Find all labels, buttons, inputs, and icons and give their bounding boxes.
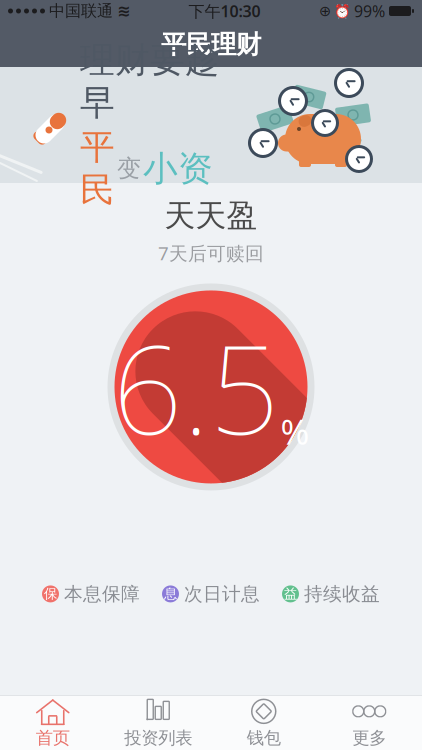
staticText: 平民理财 [161,29,261,60]
staticText: % [280,408,309,454]
staticText: 钱包 [247,727,281,749]
staticText: 保 [44,586,57,602]
staticText: 下午10:30 [188,0,260,22]
staticText: 7天后可赎回 [158,241,264,265]
button[interactable]: 首页 [0,691,105,750]
staticText: 投资列表 [124,727,192,749]
staticText: 理财要趁早 [80,39,220,124]
staticText: 持续收益 [304,582,380,605]
staticText: 平民 [80,126,115,211]
staticText: 中国联通 [49,1,113,21]
staticText: 小资 [143,147,213,190]
button[interactable]: 更多 [316,691,422,750]
staticText: 首页 [36,727,70,749]
button[interactable]: 钱包 [211,691,316,750]
staticText: 99% [354,0,385,22]
staticText: ⏰ [334,3,351,19]
staticText: 6.5 [112,305,279,468]
staticText: 天天盈 [164,197,257,235]
staticText: 本息保障 [64,582,140,605]
staticText: 益 [284,586,297,602]
staticText: 息 [164,586,177,602]
staticText: 变 [117,154,141,183]
staticText: 次日计息 [184,582,260,605]
staticText: 更多 [352,727,386,749]
staticText: ≋ [117,2,130,20]
button[interactable]: 投资列表 [105,691,211,750]
staticText: ⊕ [319,3,331,19]
